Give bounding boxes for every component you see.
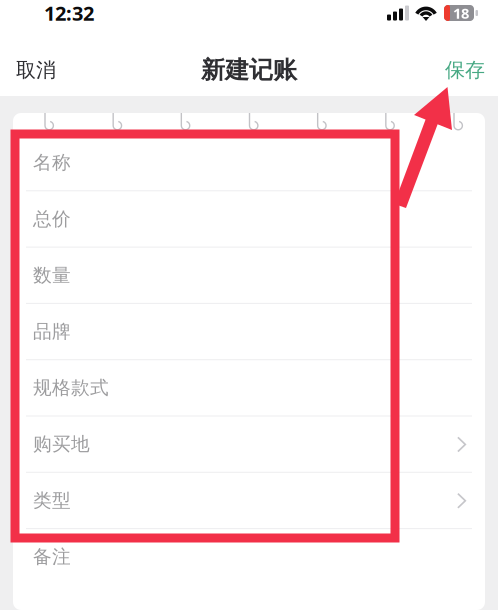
- staticText: 总价: [33, 207, 71, 230]
- staticText: 名称: [33, 151, 71, 174]
- button[interactable]: 数量: [13, 248, 485, 304]
- staticText: 数量: [33, 264, 71, 287]
- staticText: 12:32: [44, 0, 94, 26]
- staticText: 备注: [33, 545, 71, 568]
- staticText: 18: [453, 3, 469, 23]
- staticText: 类型: [33, 489, 71, 512]
- button[interactable]: 类型: [13, 473, 485, 529]
- staticText: 品牌: [33, 320, 71, 343]
- button[interactable]: 总价: [13, 191, 485, 248]
- button[interactable]: 名称: [13, 135, 485, 191]
- button[interactable]: 取消: [0, 44, 72, 96]
- staticText: 购买地: [33, 433, 90, 456]
- staticText: 保存: [445, 58, 485, 82]
- staticText: 新建记账: [201, 55, 297, 85]
- button[interactable]: 购买地: [13, 416, 485, 473]
- button[interactable]: 备注: [13, 529, 485, 584]
- staticText: 规格款式: [33, 376, 109, 399]
- button[interactable]: 品牌: [13, 304, 485, 360]
- staticText: 取消: [16, 58, 56, 82]
- button[interactable]: 规格款式: [13, 360, 485, 416]
- button[interactable]: 保存: [432, 44, 498, 96]
